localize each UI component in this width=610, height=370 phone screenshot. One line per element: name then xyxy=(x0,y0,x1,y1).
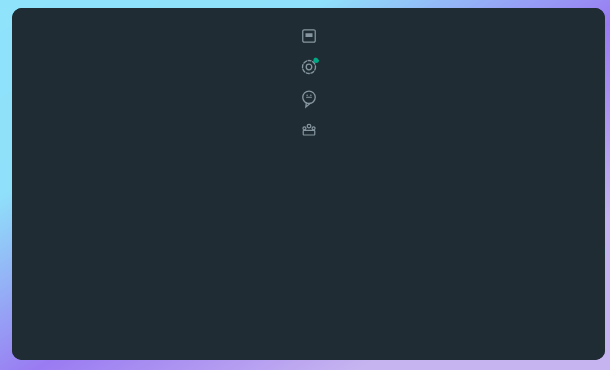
button[interactable]: Communities xyxy=(297,117,321,141)
button[interactable]: Chats xyxy=(297,24,321,48)
button[interactable]: Status xyxy=(297,55,321,79)
button[interactable]: Channels xyxy=(297,86,321,110)
